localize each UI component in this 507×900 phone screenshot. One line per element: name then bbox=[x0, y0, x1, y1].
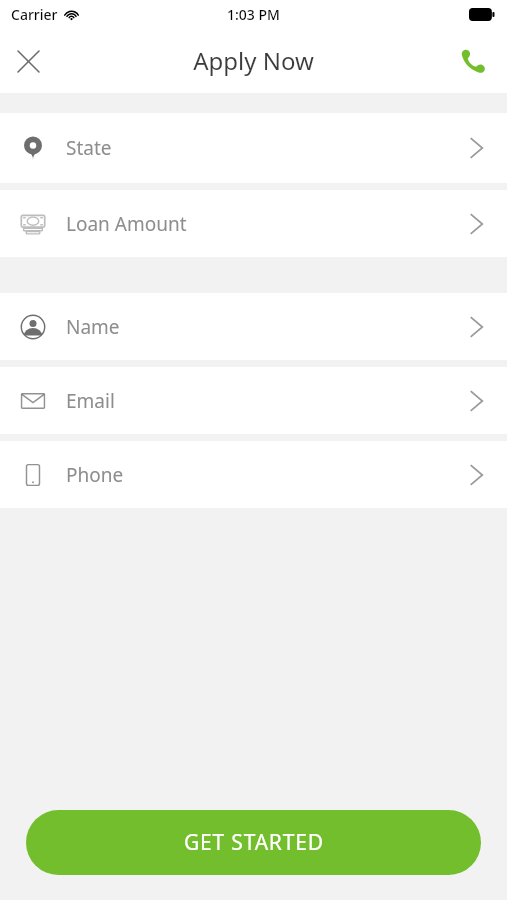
button[interactable]: Phone bbox=[0, 441, 507, 508]
staticText: Apply Now bbox=[193, 44, 314, 77]
staticText: Email bbox=[66, 388, 115, 414]
button[interactable]: Call bbox=[451, 39, 495, 83]
staticText: GET STARTED bbox=[184, 828, 324, 857]
button[interactable]: State bbox=[0, 113, 507, 183]
button[interactable]: Name bbox=[0, 293, 507, 360]
staticText: Loan Amount bbox=[66, 211, 187, 237]
staticText: Carrier bbox=[11, 5, 58, 24]
staticText: 1:03 PM bbox=[227, 5, 280, 24]
button[interactable]: Loan Amount bbox=[0, 190, 507, 257]
button[interactable]: GET STARTED bbox=[26, 810, 481, 875]
staticText: Name bbox=[66, 314, 120, 340]
staticText: State bbox=[66, 135, 112, 161]
button[interactable]: Close bbox=[0, 33, 56, 89]
button[interactable]: Email bbox=[0, 367, 507, 434]
staticText: Phone bbox=[66, 462, 124, 488]
